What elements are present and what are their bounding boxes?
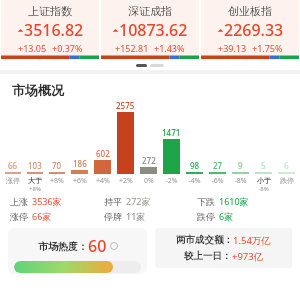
staticText: 5 [261,160,266,171]
staticText: +0.37% [52,42,83,54]
staticText: -2% [165,176,178,186]
staticText: 66 [8,160,18,171]
staticText: 上证指数 [28,4,72,18]
button[interactable]: 上证指数 [1,0,99,60]
staticText: 市场概况 [12,82,64,98]
staticText: 0% [144,176,154,186]
staticText: 深证成指 [128,4,172,18]
staticText: +8% [50,176,64,186]
staticText: 较上一日： [184,250,232,262]
staticText: 6家 [219,210,234,222]
staticText: +1.43% [154,42,185,54]
staticText: 小于 [257,176,271,185]
staticText: 10873.62 [119,19,188,41]
staticText: +6% [73,176,87,186]
staticText: 大于 [28,176,42,185]
staticText: 6 [284,160,289,171]
button[interactable]: 停牌 [104,210,197,222]
staticText: 70 [52,160,62,171]
button[interactable]: 涨停 [10,210,104,222]
staticText: 跌停 [197,211,215,222]
staticText: 9 [238,160,243,171]
staticText: +973亿 [232,250,264,263]
button[interactable]: 两市成交额： [155,228,292,268]
staticText: 停牌 [104,211,122,222]
staticText: 2269.33 [224,19,284,41]
staticText: 98 [190,160,200,171]
button[interactable]: 跌停 [197,210,290,222]
staticText: 272家 [126,195,151,207]
button[interactable]: 创业板指 [201,0,299,60]
staticText: 3536家 [32,195,62,207]
staticText: 3516.82 [24,19,84,41]
button[interactable]: 市场热度： [8,228,147,274]
staticText: +4% [96,176,110,186]
staticText: 272 [142,155,156,166]
staticText: 市场热度： [38,240,88,253]
staticText: 涨停 [6,176,20,185]
staticText: 两市成交额： [176,234,233,246]
staticText: -6% [211,176,224,186]
staticText: 1471 [162,127,181,138]
staticText: 27 [213,160,223,171]
staticText: +152.81 [115,42,149,54]
staticText: 602 [96,148,110,159]
staticText: 2575 [116,100,135,111]
button[interactable]: 深证成指 [101,0,199,60]
button[interactable]: 上涨 [10,195,104,207]
button[interactable]: 下跌 [197,195,290,207]
staticText: 持平 [104,196,122,207]
staticText: 下跌 [197,196,215,207]
staticText: 103 [28,160,42,171]
staticText: +13.05 [18,42,47,54]
button[interactable]: 持平 [104,195,197,207]
staticText: 跌停 [280,176,294,185]
staticText: +1.75% [252,42,283,54]
staticText: -8% [234,176,247,186]
staticText: 上涨 [10,196,28,207]
staticText: 186 [73,158,87,169]
staticText: +2% [119,176,133,186]
staticText: 11家 [126,210,146,222]
staticText: 涨停 [10,211,28,222]
staticText: -8% [258,185,269,193]
staticText: 66家 [32,210,52,222]
staticText: -4% [188,176,201,186]
staticText: 创业板指 [228,4,272,18]
staticText: +39.13 [218,42,247,54]
other: 说明 [110,242,118,250]
staticText: 1.54万亿 [233,234,271,247]
staticText: 60 [88,235,107,257]
staticText: 1610家 [219,195,249,207]
staticText: +8% [29,185,41,193]
